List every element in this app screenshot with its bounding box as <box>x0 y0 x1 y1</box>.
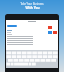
staticText: Take Your Business <box>20 2 44 6</box>
staticText: With You <box>25 6 40 10</box>
